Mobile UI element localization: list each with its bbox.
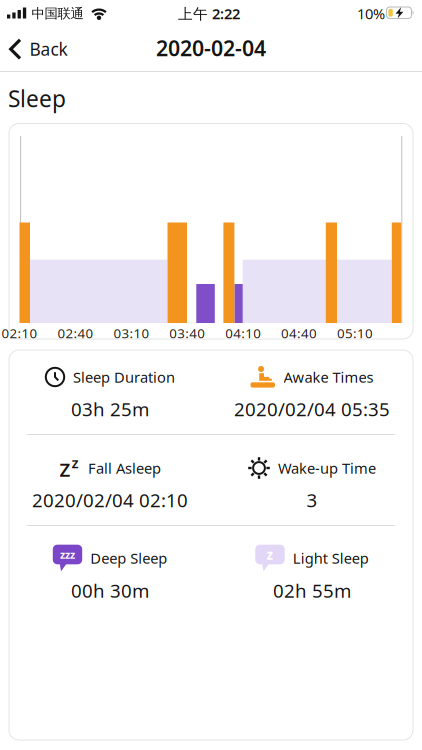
staticText: Sleep Duration (73, 367, 175, 387)
button[interactable]: Back (0, 33, 78, 66)
staticText: z (266, 546, 273, 563)
staticText: 03h 25m (71, 397, 149, 421)
staticText: 02:10 (2, 324, 38, 342)
staticText: 上午 2:22 (178, 4, 240, 23)
staticText: Z (59, 457, 70, 482)
staticText: 中国联通 (31, 5, 83, 22)
staticText: 2020/02/04 02:10 (32, 488, 188, 512)
staticText: 05:10 (337, 324, 373, 342)
staticText: 02:40 (57, 324, 93, 342)
staticText: zzz (60, 547, 75, 562)
staticText: Awake Times (283, 367, 373, 387)
staticText: Back (30, 38, 68, 61)
staticText: 03:40 (169, 324, 205, 342)
staticText: 00h 30m (71, 578, 149, 603)
staticText: Deep Sleep (90, 548, 167, 568)
staticText: 03:10 (113, 324, 149, 342)
staticText: 2020/02/04 05:35 (234, 397, 390, 421)
staticText: 04:40 (281, 324, 317, 342)
staticText: Light Sleep (293, 548, 369, 568)
staticText: 3 (306, 488, 317, 512)
staticText: 04:10 (225, 324, 261, 342)
staticText: 02h 55m (273, 578, 351, 603)
staticText: z (71, 453, 78, 472)
staticText: Sleep (8, 83, 66, 113)
staticText: 2020-02-04 (156, 34, 266, 62)
staticText: 10% (357, 4, 385, 23)
staticText: Wake-up Time (278, 458, 376, 478)
staticText: Fall Asleep (88, 458, 161, 478)
